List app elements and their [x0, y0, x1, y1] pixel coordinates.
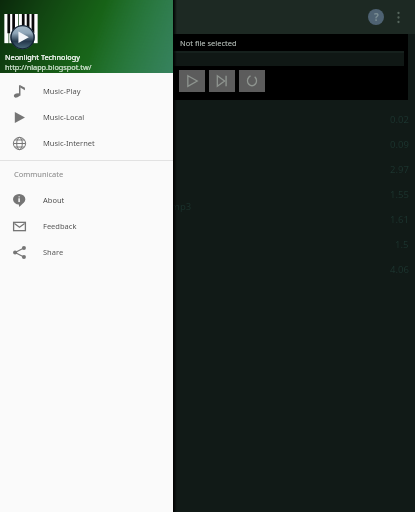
- staticText: Neonlight Technology: [5, 52, 80, 62]
- staticText: 0.02: [390, 113, 409, 126]
- staticText: About: [43, 195, 65, 205]
- staticText: 0.09: [390, 138, 409, 151]
- button[interactable]: 0.09: [0, 132, 415, 157]
- button[interactable]: Feedback: [0, 213, 173, 239]
- button[interactable]: About: [0, 187, 173, 213]
- button[interactable]: Neonlight Technology: [0, 0, 173, 73]
- button[interactable]: 1.5: [0, 232, 415, 257]
- staticText: Share: [43, 247, 64, 257]
- staticText: 4.06: [390, 263, 409, 276]
- button[interactable]: mp3: [0, 207, 415, 232]
- button[interactable]: Music-Play: [0, 78, 173, 104]
- button[interactable]: Music-Local: [0, 104, 173, 130]
- button[interactable]: Music-Internet: [0, 130, 173, 156]
- button[interactable]: Share: [0, 239, 173, 265]
- button[interactable]: Repeat: [239, 70, 265, 92]
- button[interactable]: Help: [363, 4, 389, 30]
- staticText: 1.5: [395, 238, 409, 251]
- button[interactable]: Next: [209, 70, 235, 92]
- staticText: ?: [374, 10, 379, 24]
- staticText: Music-Local: [43, 112, 85, 122]
- button[interactable]: Seek bar: [0, 51, 404, 66]
- staticText: mp3: [171, 200, 192, 213]
- staticText: Music-Play: [43, 86, 81, 96]
- button[interactable]: 4.06: [0, 257, 415, 282]
- staticText: Feedback: [43, 221, 77, 231]
- staticText: 1.55: [390, 188, 409, 201]
- staticText: 1.61: [390, 213, 409, 226]
- staticText: Communicate: [14, 169, 64, 179]
- button[interactable]: Play: [179, 70, 205, 92]
- staticText: 2.97: [390, 163, 409, 176]
- button[interactable]: 2.97: [0, 157, 415, 182]
- staticText: Music-Internet: [43, 138, 95, 148]
- button[interactable]: More options: [389, 8, 407, 26]
- staticText: http://nlapp.blogspot.tw/: [5, 62, 92, 72]
- button[interactable]: 0.02: [0, 107, 415, 132]
- button[interactable]: 1.55: [0, 182, 415, 207]
- staticText: Not file selected: [180, 38, 237, 48]
